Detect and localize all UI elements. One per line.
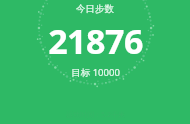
staticText: 21876 (48, 18, 143, 64)
staticText: 今日步数 (76, 3, 114, 15)
button[interactable]: 今日步数 (0, 3, 190, 79)
staticText: 目标 10000 (71, 66, 120, 79)
